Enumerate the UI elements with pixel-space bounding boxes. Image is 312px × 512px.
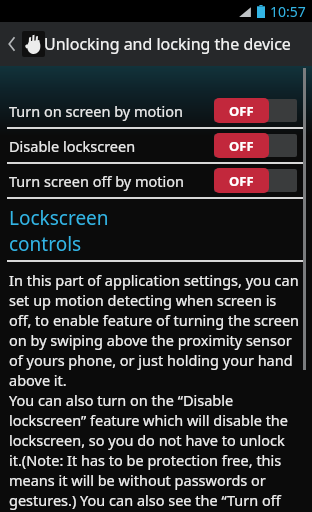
staticText: Turn on screen by motion: [9, 101, 214, 121]
staticText: OFF: [229, 172, 254, 190]
staticText: OFF: [229, 137, 254, 155]
staticText: 10:57: [270, 2, 306, 21]
button[interactable]: Turn screen off by motion: [0, 164, 312, 197]
button[interactable]: Disable lockscreen: [0, 129, 312, 162]
staticText: Unlocking and locking the device: [44, 33, 291, 55]
staticText: Turn screen off by motion: [9, 171, 214, 191]
button[interactable]: Turn on screen by motion: [0, 94, 312, 127]
button[interactable]: Toggle off: [214, 168, 297, 193]
button[interactable]: Toggle off: [214, 98, 297, 123]
button[interactable]: Back: [4, 27, 48, 61]
button[interactable]: Toggle off: [214, 133, 297, 158]
staticText: Disable lockscreen: [9, 136, 214, 156]
staticText: OFF: [229, 102, 254, 120]
staticText: In this part of application settings, yo…: [9, 270, 301, 512]
staticText: Lockscreen controls: [9, 205, 109, 256]
